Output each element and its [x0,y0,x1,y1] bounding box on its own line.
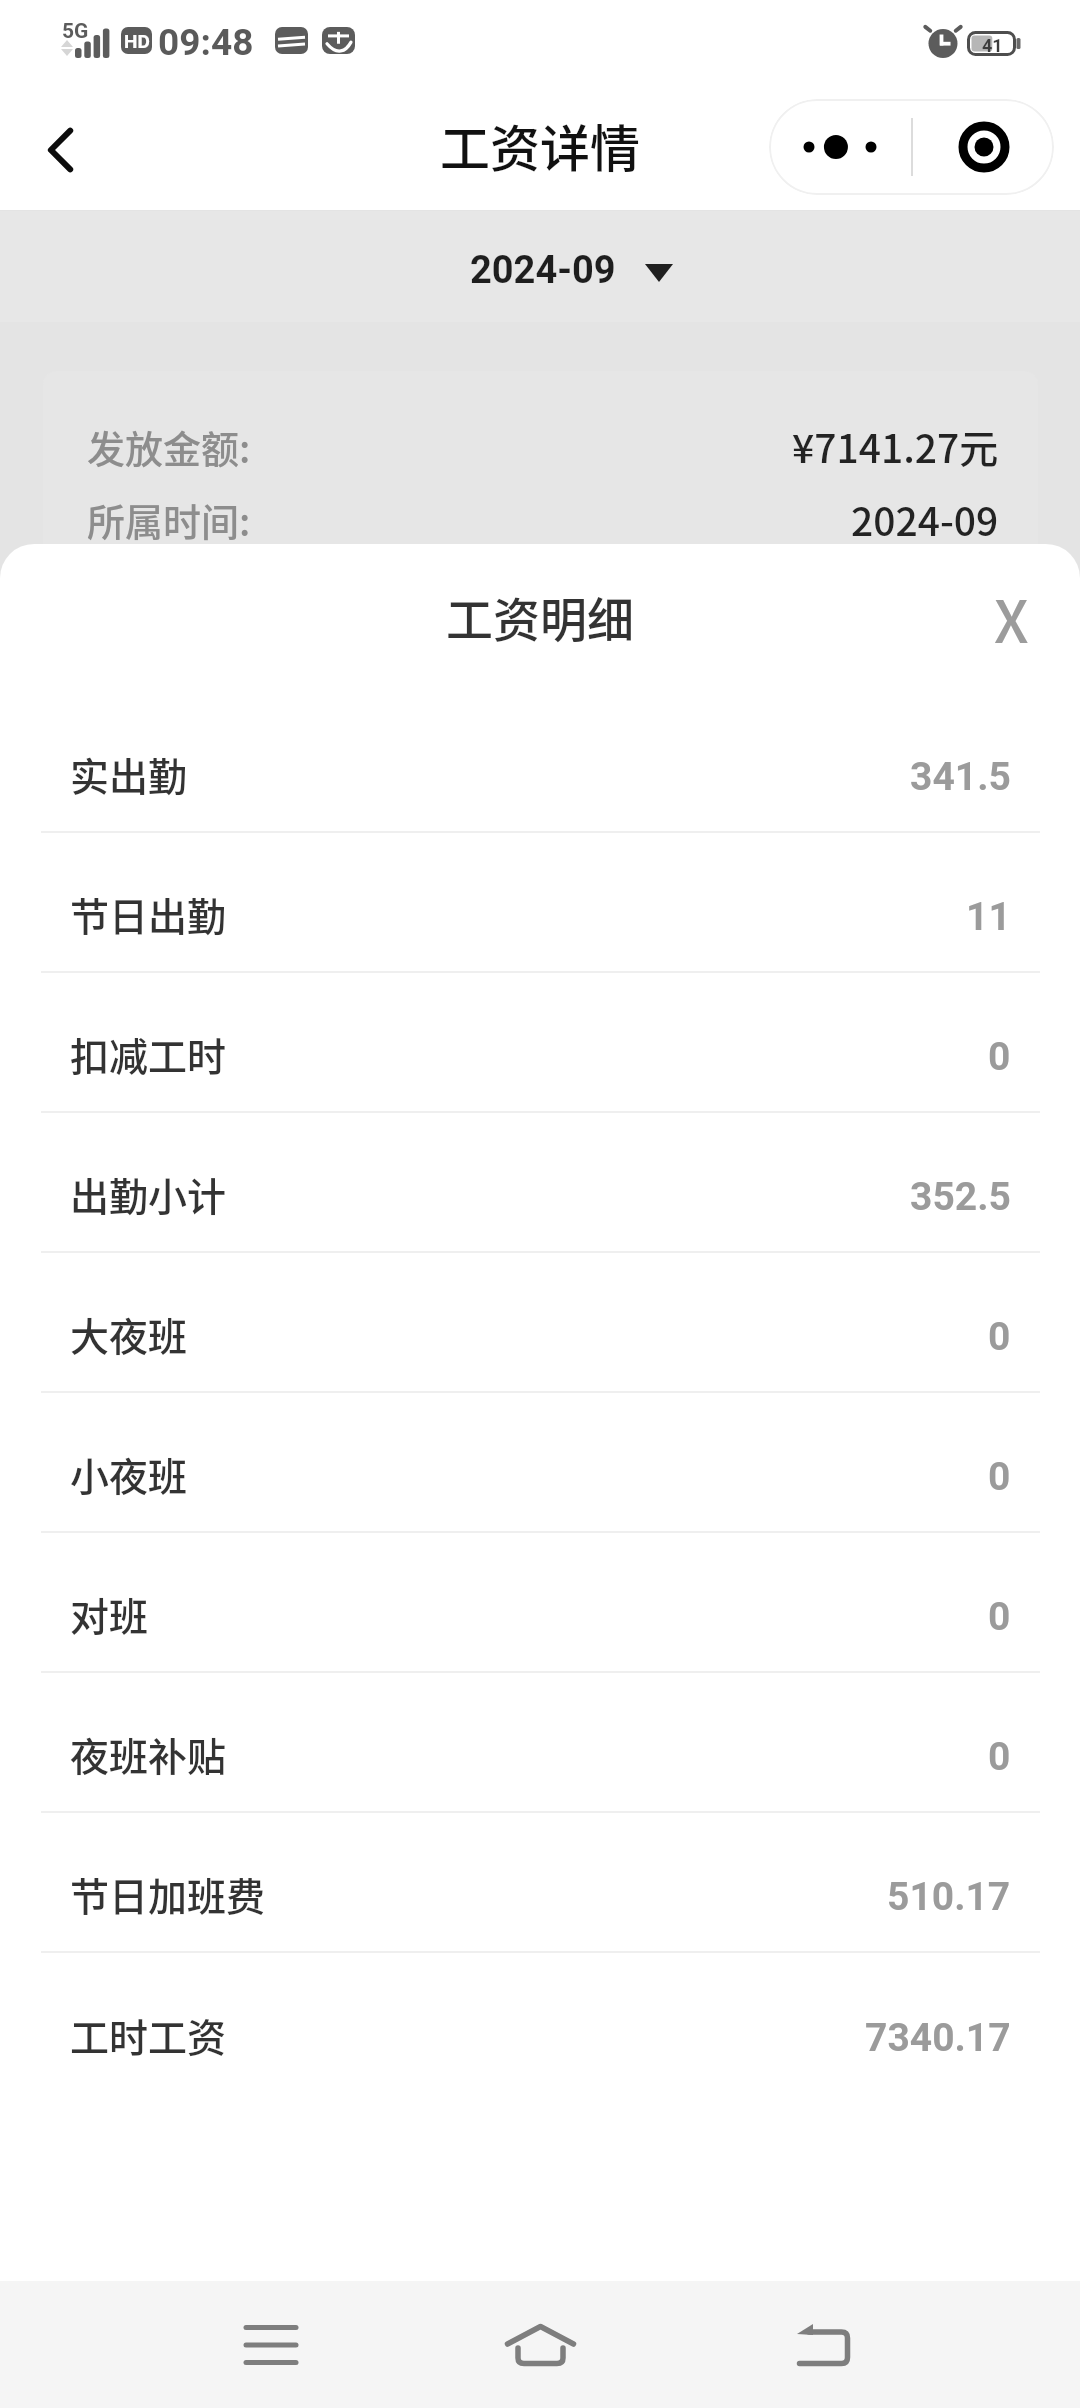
staticText: 实出勤 [70,746,188,802]
button[interactable]: 小夜班 [0,1393,1080,1531]
staticText: 节日加班费 [70,1866,266,1922]
staticText: 0 [988,1454,1011,1500]
staticText: 7340.17 [865,2015,1011,2061]
button[interactable]: 大夜班 [0,1253,1080,1391]
staticText: 对班 [70,1586,149,1642]
staticText: 341.5 [910,754,1011,800]
staticText: 352.5 [910,1174,1011,1220]
staticText: 出勤小计 [70,1166,227,1222]
button[interactable]: Back [753,2290,893,2400]
button[interactable]: Recents [201,2290,341,2400]
staticText: 5G [62,19,89,44]
button[interactable]: Close [966,573,1056,663]
staticText: 0 [988,1314,1011,1360]
button[interactable]: Home [470,2290,610,2400]
staticText: 节日出勤 [70,886,227,942]
button[interactable]: Back [18,107,104,193]
button[interactable]: 实出勤 [0,693,1080,831]
staticText: ¥7141.27元 [792,418,999,474]
button[interactable]: 工时工资 [0,1953,1080,2093]
staticText: HD [124,30,150,52]
button[interactable]: 夜班补贴 [0,1673,1080,1811]
staticText: 小夜班 [70,1446,188,1502]
staticText: 发放金额: [87,419,251,474]
staticText: 工时工资 [70,2007,227,2063]
button[interactable]: Select month [470,248,673,293]
button[interactable]: 扣减工时 [0,973,1080,1111]
staticText: 11 [966,894,1011,940]
staticText: 夜班补贴 [70,1726,227,1782]
staticText: 2024-09 [470,248,616,293]
staticText: 0 [988,1734,1011,1780]
staticText: 41 [982,35,1003,56]
button[interactable]: More options [769,99,911,195]
staticText: 2024-09 [851,491,999,547]
button[interactable]: 对班 [0,1533,1080,1671]
staticText: 所属时间: [87,492,251,547]
staticText: 工资明细 [446,582,634,650]
staticText: 09:48 [158,21,254,64]
staticText: 0 [988,1034,1011,1080]
staticText: 大夜班 [70,1306,188,1362]
staticText: 0 [988,1594,1011,1640]
button[interactable]: 节日出勤 [0,833,1080,971]
staticText: 工资详情 [440,109,640,181]
staticText: 510.17 [887,1874,1011,1920]
staticText: X [994,576,1029,660]
staticText: 扣减工时 [70,1026,227,1082]
button[interactable]: Close mini program [913,99,1054,195]
button[interactable]: 出勤小计 [0,1113,1080,1251]
button[interactable]: 节日加班费 [0,1813,1080,1951]
